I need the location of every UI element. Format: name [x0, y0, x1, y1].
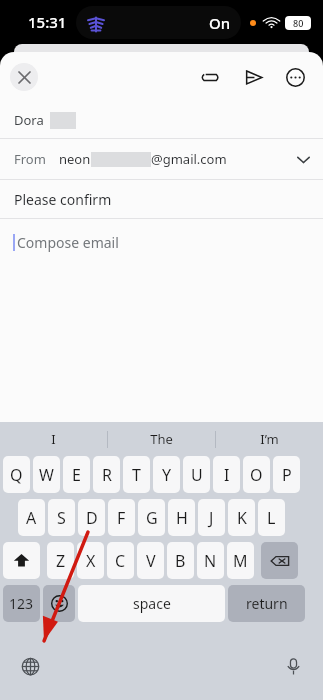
button[interactable]: M: [227, 542, 254, 579]
staticText: G: [146, 507, 158, 529]
staticText: O: [250, 464, 263, 486]
button[interactable]: Emoji: [43, 585, 75, 622]
staticText: I: [224, 464, 230, 486]
staticText: B: [175, 550, 186, 572]
staticText: From: [14, 150, 46, 168]
staticText: A: [26, 507, 37, 529]
staticText: K: [237, 507, 247, 529]
button[interactable]: Dora: [0, 102, 323, 138]
staticText: V: [146, 550, 156, 572]
button[interactable]: Please confirm: [0, 180, 323, 218]
button[interactable]: H: [168, 499, 195, 536]
button[interactable]: O: [243, 456, 270, 493]
button[interactable]: X: [77, 542, 104, 579]
staticText: J: [209, 507, 214, 529]
staticText: X: [86, 550, 96, 572]
staticText: @gmail.com: [151, 150, 227, 168]
button[interactable]: G: [138, 499, 165, 536]
staticText: Dora: [14, 111, 44, 129]
button[interactable]: Attach file: [191, 59, 227, 95]
button[interactable]: F: [108, 499, 135, 536]
button[interactable]: R: [93, 456, 120, 493]
button[interactable]: S: [48, 499, 75, 536]
staticText: N: [204, 550, 217, 572]
staticText: U: [191, 464, 203, 486]
staticText: Please confirm: [14, 190, 112, 209]
button[interactable]: K: [228, 499, 255, 536]
staticText: space: [133, 594, 171, 613]
staticText: T: [132, 464, 141, 486]
button[interactable]: U: [183, 456, 210, 493]
staticText: I: [51, 430, 56, 448]
button[interactable]: Z: [47, 542, 74, 579]
button[interactable]: space: [78, 585, 225, 622]
button[interactable]: Switch keyboard language: [14, 650, 46, 682]
button[interactable]: A: [18, 499, 45, 536]
staticText: The: [150, 430, 173, 448]
button[interactable]: Send: [235, 59, 271, 95]
button[interactable]: J: [198, 499, 225, 536]
staticText: F: [117, 507, 126, 529]
staticText: 15:31: [28, 12, 67, 32]
button[interactable]: return: [228, 585, 305, 622]
button[interactable]: N: [197, 542, 224, 579]
staticText: Y: [162, 464, 172, 486]
staticText: P: [282, 464, 292, 486]
button[interactable]: Y: [153, 456, 180, 493]
staticText: W: [39, 464, 54, 486]
staticText: 80: [293, 17, 304, 29]
button[interactable]: W: [33, 456, 60, 493]
staticText: D: [86, 507, 98, 529]
button[interactable]: I: [0, 422, 107, 456]
staticText: M: [233, 550, 248, 572]
button[interactable]: I: [213, 456, 240, 493]
button[interactable]: Compose email: [0, 219, 323, 422]
staticText: R: [102, 464, 112, 486]
button[interactable]: 123: [3, 585, 40, 622]
staticText: I’m: [260, 430, 279, 448]
staticText: Z: [56, 550, 66, 572]
button[interactable]: D: [78, 499, 105, 536]
button[interactable]: On: [76, 6, 241, 39]
button[interactable]: L: [258, 499, 285, 536]
button[interactable]: I’m: [216, 422, 323, 456]
button[interactable]: T: [123, 456, 150, 493]
staticText: E: [72, 464, 81, 486]
button[interactable]: P: [273, 456, 300, 493]
button[interactable]: Backspace: [261, 542, 298, 579]
staticText: L: [267, 507, 276, 529]
button[interactable]: E: [63, 456, 90, 493]
button[interactable]: Close: [10, 63, 38, 91]
staticText: return: [246, 594, 288, 613]
button[interactable]: Q: [3, 456, 30, 493]
staticText: 123: [9, 594, 34, 613]
staticText: neon: [59, 150, 91, 168]
staticText: C: [115, 550, 126, 572]
staticText: On: [209, 13, 231, 33]
staticText: Compose email: [17, 233, 119, 252]
button[interactable]: More options: [277, 59, 313, 95]
button[interactable]: Voice input: [277, 650, 309, 682]
staticText: S: [57, 507, 66, 529]
button[interactable]: V: [137, 542, 164, 579]
button[interactable]: From: [0, 139, 323, 179]
button[interactable]: C: [107, 542, 134, 579]
button[interactable]: The: [108, 422, 215, 456]
staticText: Q: [10, 464, 23, 486]
button[interactable]: B: [167, 542, 194, 579]
button[interactable]: Shift: [3, 542, 40, 579]
staticText: H: [176, 507, 188, 529]
